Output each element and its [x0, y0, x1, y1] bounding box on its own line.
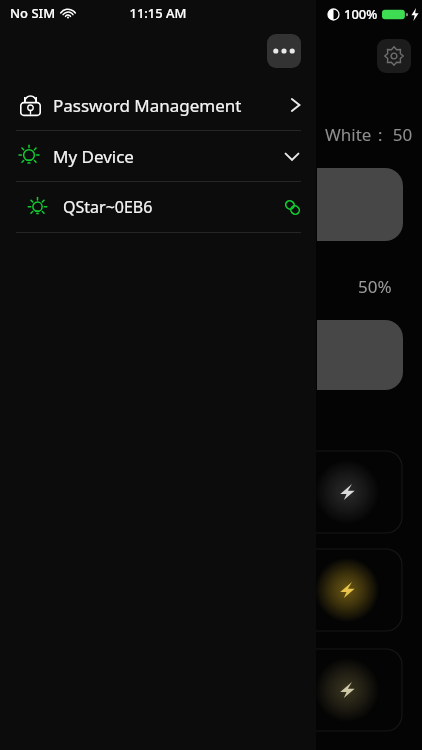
- staticText: No SIM: [10, 4, 56, 22]
- staticText: 100%: [344, 5, 378, 23]
- button[interactable]: Brightness slider: [317, 320, 403, 390]
- button[interactable]: QStar~0EB6: [0, 182, 316, 232]
- button[interactable]: White brightness slider: [317, 168, 403, 241]
- other: Open password management: [289, 95, 302, 115]
- button[interactable]: Flash mode: [317, 447, 422, 537]
- staticText: Password Management: [53, 94, 242, 117]
- staticText: QStar~0EB6: [63, 196, 153, 218]
- staticText: 11:15 AM: [129, 4, 187, 22]
- staticText: White： 50: [325, 123, 413, 146]
- button[interactable]: Settings: [377, 39, 411, 73]
- other: Collapse my device: [282, 150, 302, 163]
- button[interactable]: My Device: [0, 131, 316, 181]
- staticText: 50%: [358, 275, 392, 298]
- button[interactable]: Flash mode: [317, 545, 422, 635]
- other: Connected: [283, 198, 302, 217]
- button[interactable]: Flash mode: [317, 645, 422, 735]
- staticText: My Device: [53, 145, 134, 168]
- button[interactable]: More options: [267, 34, 301, 68]
- button[interactable]: Password Management: [0, 80, 316, 130]
